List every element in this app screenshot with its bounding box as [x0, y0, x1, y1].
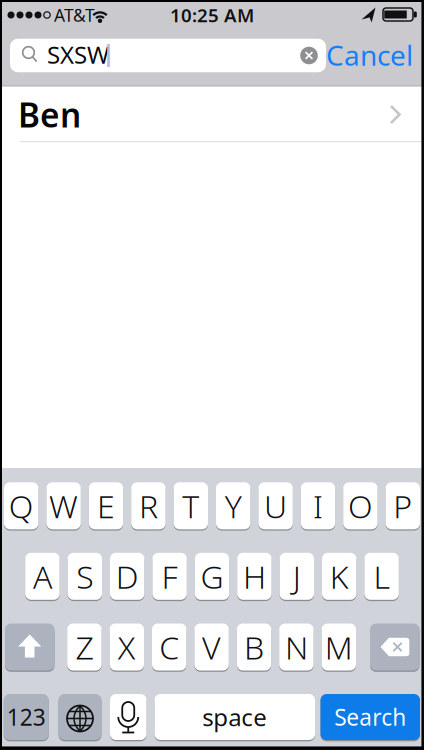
staticText: K: [330, 555, 349, 598]
button[interactable]: Delete: [370, 623, 419, 670]
staticText: space: [202, 701, 267, 733]
button[interactable]: G: [195, 553, 229, 600]
staticText: Z: [75, 626, 93, 668]
button[interactable]: H: [237, 553, 272, 600]
button[interactable]: I: [301, 482, 335, 529]
staticText: V: [202, 626, 221, 668]
staticText: N: [285, 626, 308, 668]
staticText: Cancel: [326, 36, 413, 74]
staticText: 10:25 AM: [170, 3, 254, 27]
button[interactable]: Shift: [5, 623, 54, 670]
staticText: A: [33, 555, 52, 598]
button[interactable]: Cancel: [283, 33, 413, 77]
button[interactable]: Search: [320, 694, 420, 740]
staticText: W: [49, 485, 78, 527]
button[interactable]: Q: [4, 482, 38, 529]
staticText: AT&T: [54, 3, 95, 26]
staticText: P: [393, 485, 412, 527]
staticText: B: [244, 626, 264, 668]
button[interactable]: K: [322, 553, 356, 600]
staticText: F: [162, 555, 178, 598]
button[interactable]: Z: [67, 623, 102, 670]
button[interactable]: W: [46, 482, 81, 529]
button[interactable]: U: [258, 482, 293, 529]
button[interactable]: O: [343, 482, 378, 529]
button[interactable]: C: [152, 623, 186, 670]
button[interactable]: N: [279, 623, 314, 670]
button[interactable]: M: [322, 623, 356, 670]
button[interactable]: Ben: [0, 87, 424, 142]
staticText: G: [200, 555, 223, 598]
staticText: H: [243, 555, 266, 598]
button[interactable]: space: [154, 694, 315, 740]
button[interactable]: B: [237, 623, 271, 670]
button[interactable]: Next keyboard: [58, 694, 101, 740]
button[interactable]: P: [386, 482, 420, 529]
button[interactable]: E: [89, 482, 123, 529]
staticText: Y: [225, 485, 242, 527]
staticText: Q: [9, 485, 34, 527]
staticText: R: [139, 485, 158, 527]
button[interactable]: T: [174, 482, 208, 529]
staticText: E: [97, 485, 115, 527]
staticText: C: [159, 626, 179, 668]
staticText: U: [264, 485, 287, 527]
button[interactable]: A: [25, 553, 60, 600]
button[interactable]: Clear text: [300, 47, 318, 64]
staticText: X: [118, 626, 136, 668]
staticText: 123: [7, 702, 46, 732]
button[interactable]: D: [110, 553, 144, 600]
button[interactable]: R: [131, 482, 166, 529]
button[interactable]: Y: [216, 482, 250, 529]
staticText: I: [313, 485, 323, 527]
staticText: Search: [334, 702, 406, 732]
staticText: J: [293, 555, 301, 598]
button[interactable]: L: [364, 553, 399, 600]
staticText: S: [76, 555, 93, 598]
button[interactable]: J: [280, 553, 314, 600]
staticText: D: [116, 555, 139, 598]
button[interactable]: V: [194, 623, 229, 670]
staticText: T: [182, 485, 199, 527]
staticText: Ben: [18, 92, 81, 137]
staticText: SXSW: [47, 39, 109, 70]
staticText: M: [325, 626, 353, 668]
button[interactable]: X: [110, 623, 144, 670]
button[interactable]: S: [68, 553, 102, 600]
button[interactable]: F: [152, 553, 187, 600]
button[interactable]: Dictate: [110, 694, 146, 740]
staticText: O: [348, 485, 373, 527]
staticText: L: [374, 555, 390, 598]
button[interactable]: 123: [4, 694, 49, 740]
